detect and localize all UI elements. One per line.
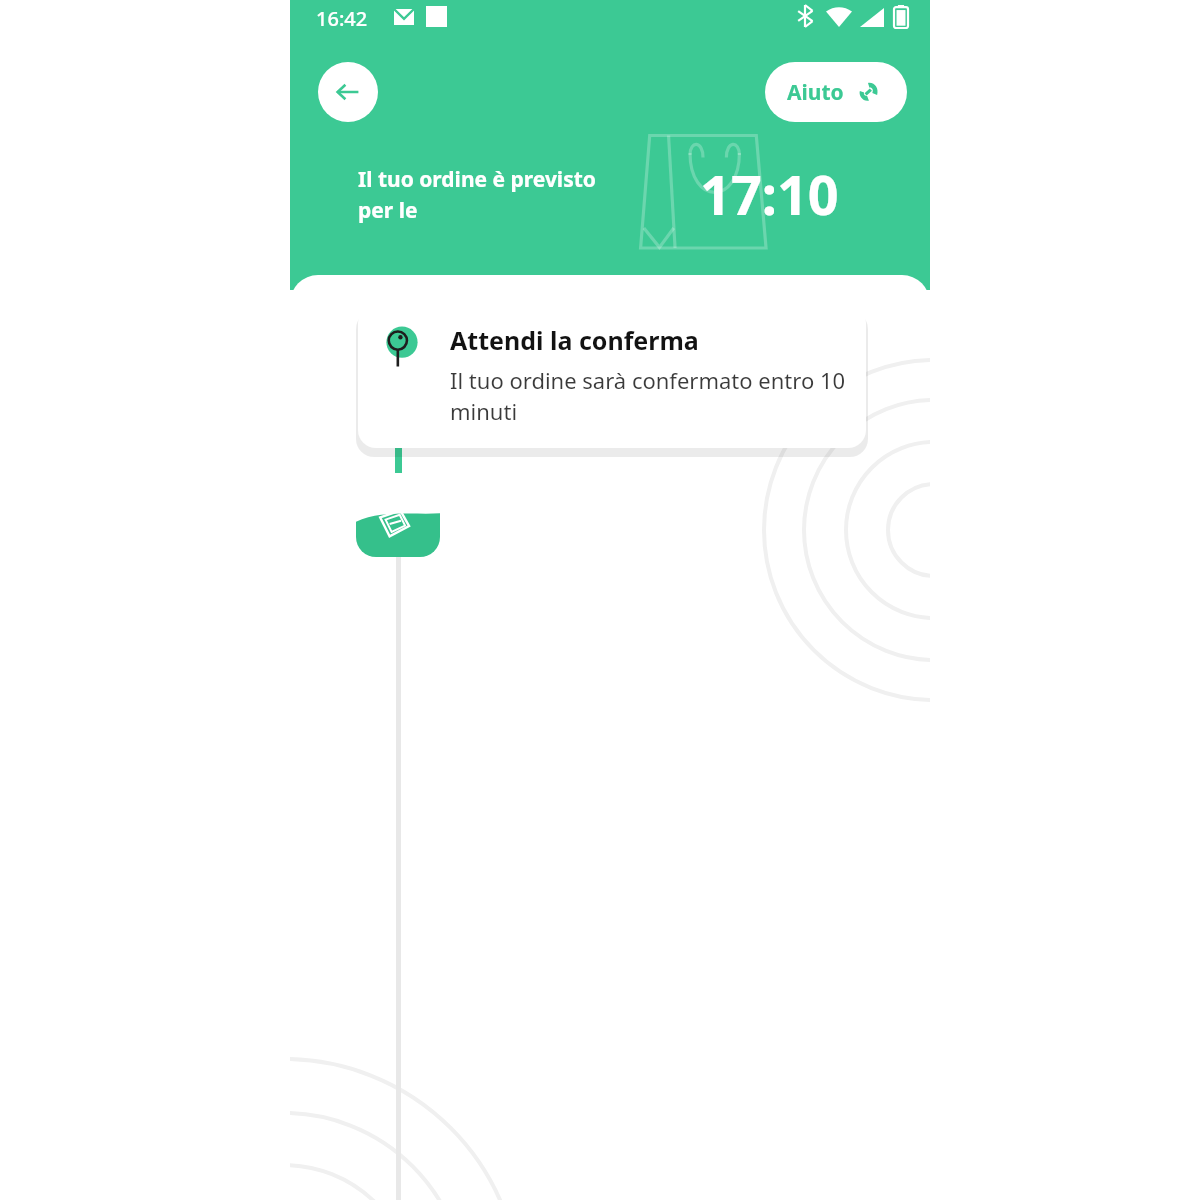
button[interactable]: Aiuto [765, 62, 907, 122]
button[interactable]: Attendi la conferma [358, 305, 866, 448]
staticText: Aiuto [787, 78, 844, 107]
staticText: Il tuo ordine è previsto per le [358, 165, 608, 224]
staticText: 17:10 [700, 157, 839, 231]
staticText: 16:42 [316, 5, 368, 32]
button[interactable]: Back [318, 62, 378, 122]
staticText: Il tuo ordine sarà confermato entro 10 m… [450, 365, 846, 427]
staticText: Attendi la conferma [450, 323, 699, 357]
